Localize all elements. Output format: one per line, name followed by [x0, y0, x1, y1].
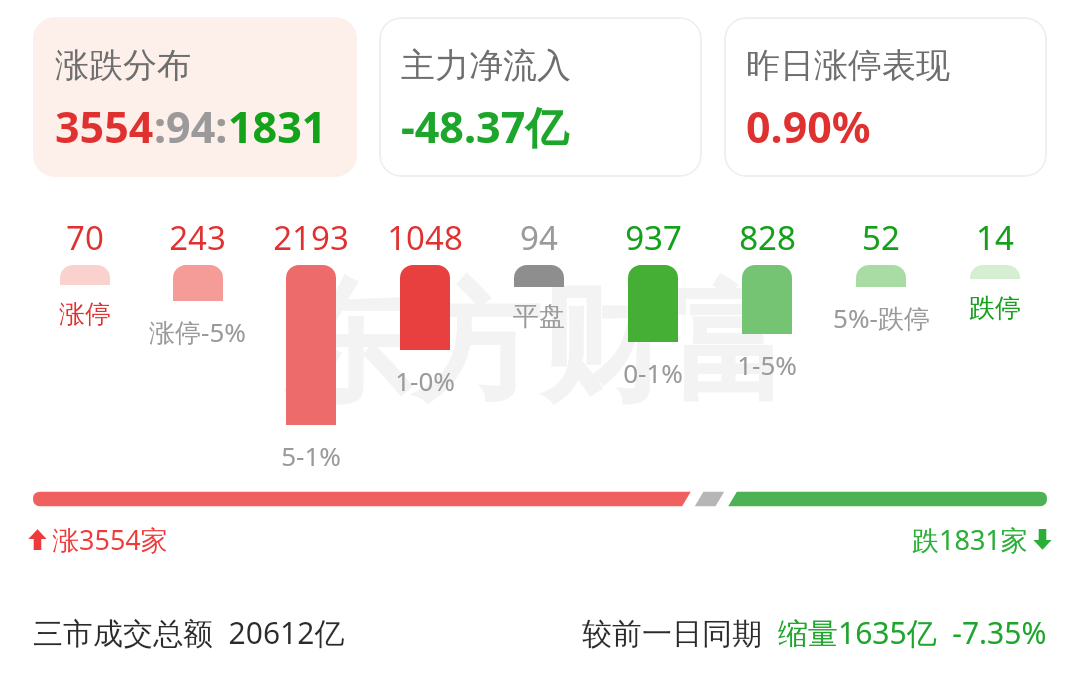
- button[interactable]: 涨跌分布: [33, 17, 357, 177]
- other: 下跌家数: [1033, 528, 1052, 551]
- button[interactable]: 昨日涨停表现: [724, 17, 1047, 177]
- button[interactable]: 2193: [254, 215, 368, 467]
- staticText: 跌1831家: [912, 521, 1028, 558]
- staticText: 70: [66, 215, 104, 260]
- button[interactable]: 1048: [368, 215, 482, 398]
- staticText: 涨3554家: [52, 521, 168, 558]
- staticText: 828: [739, 215, 796, 260]
- button[interactable]: 14: [938, 215, 1052, 325]
- staticText: 5%-跌停: [833, 300, 930, 336]
- staticText: 东方财富: [284, 265, 796, 426]
- staticText: 94: [520, 215, 558, 260]
- staticText: 缩量1635亿 -7.35%: [778, 612, 1047, 653]
- button[interactable]: 70: [28, 215, 141, 331]
- button[interactable]: 937: [596, 215, 710, 390]
- button[interactable]: 52: [824, 215, 938, 336]
- staticText: 1831: [228, 97, 327, 156]
- staticText: 较前一日同期: [582, 612, 778, 653]
- staticText: 涨停: [59, 298, 111, 331]
- button[interactable]: 828: [710, 215, 824, 382]
- staticText: 243: [169, 215, 226, 260]
- staticText: 三市成交总额 20612亿: [33, 612, 345, 653]
- staticText: 0.90%: [746, 97, 871, 156]
- staticText: 5-1%: [281, 438, 341, 467]
- staticText: 1-5%: [737, 347, 797, 382]
- button[interactable]: 上涨家数: [28, 521, 168, 558]
- staticText: 主力净流入: [401, 44, 571, 87]
- other: 上涨家数: [28, 528, 47, 551]
- staticText: :94:: [154, 97, 228, 156]
- staticText: 涨跌分布: [55, 44, 191, 87]
- staticText: 2193: [273, 215, 349, 260]
- staticText: 跌停: [969, 292, 1021, 325]
- staticText: 0-1%: [623, 355, 683, 390]
- staticText: 昨日涨停表现: [746, 44, 950, 87]
- button[interactable]: 94: [482, 215, 596, 333]
- button[interactable]: 主力净流入: [379, 17, 702, 177]
- staticText: 14: [976, 215, 1014, 260]
- staticText: 3554: [55, 97, 154, 156]
- staticText: 52: [862, 215, 900, 260]
- button[interactable]: 跌1831家: [912, 521, 1052, 558]
- button[interactable]: 243: [141, 215, 254, 350]
- staticText: 1-0%: [395, 363, 455, 398]
- staticText: 1048: [387, 215, 463, 260]
- staticText: -48.37亿: [401, 97, 569, 156]
- staticText: 涨停-5%: [149, 314, 246, 350]
- staticText: 平盘: [513, 300, 565, 333]
- button[interactable]: [33, 487, 1047, 511]
- staticText: 937: [625, 215, 682, 260]
